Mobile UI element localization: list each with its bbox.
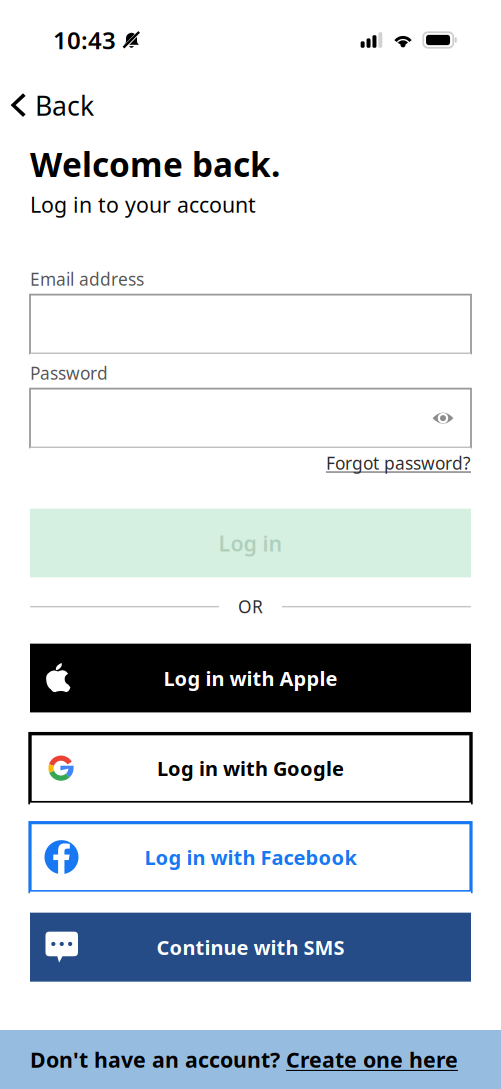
button[interactable]: Log in with Google — [30, 734, 471, 803]
button[interactable]: Log in with Apple — [30, 644, 471, 713]
staticText: Continue with SMS — [156, 934, 344, 960]
button[interactable]: Log in with Facebook — [30, 823, 471, 892]
button[interactable]: Don't have an account? — [0, 1030, 501, 1089]
button[interactable]: Continue with SMS — [30, 913, 471, 982]
staticText: Log in with Apple — [163, 665, 337, 691]
staticText: Don't have an account? — [30, 1045, 286, 1074]
staticText: Welcome back. — [30, 142, 280, 186]
staticText: Log in with Facebook — [144, 844, 356, 870]
staticText: Log in with Google — [157, 755, 344, 781]
button[interactable]: Back — [0, 80, 108, 131]
button[interactable]: Forgot password? — [326, 450, 471, 477]
staticText: 10:43 — [53, 24, 116, 56]
staticText: Email address — [30, 268, 144, 291]
staticText: Log in to your account — [30, 190, 256, 219]
staticText: Create one here — [286, 1045, 458, 1074]
staticText: OR — [238, 595, 263, 618]
button[interactable]: Log in — [30, 509, 471, 578]
staticText: Back — [35, 88, 94, 123]
staticText: Log in — [218, 529, 282, 557]
staticText: Forgot password? — [326, 452, 471, 475]
staticText: Password — [30, 362, 108, 385]
